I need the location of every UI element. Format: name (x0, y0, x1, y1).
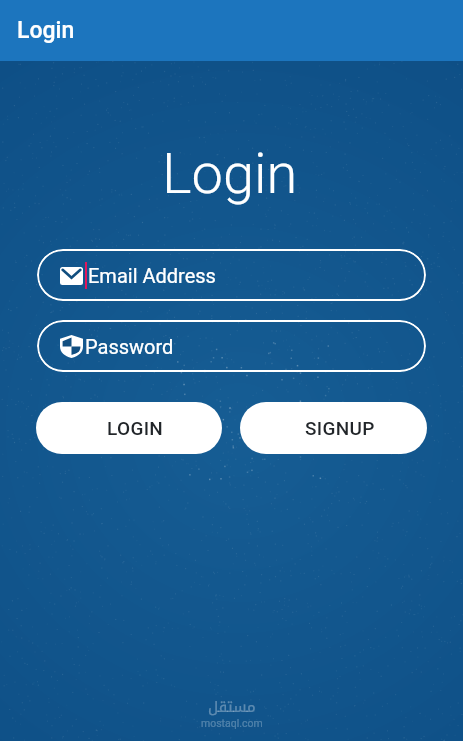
staticText: مستقل (208, 693, 256, 721)
staticText: SIGNUP (305, 417, 375, 439)
staticText: LOGIN (107, 417, 164, 439)
staticText: Password (85, 335, 174, 358)
button[interactable]: Login (0, 0, 463, 61)
button[interactable]: LOGIN (36, 402, 222, 454)
button[interactable]: Email Address (37, 249, 426, 301)
button[interactable]: Password (37, 320, 426, 372)
staticText: Email Address (88, 264, 216, 287)
staticText: Login (162, 141, 298, 207)
button[interactable]: SIGNUP (240, 402, 427, 454)
staticText: Login (17, 17, 75, 44)
staticText: mostaql.com (201, 717, 263, 729)
